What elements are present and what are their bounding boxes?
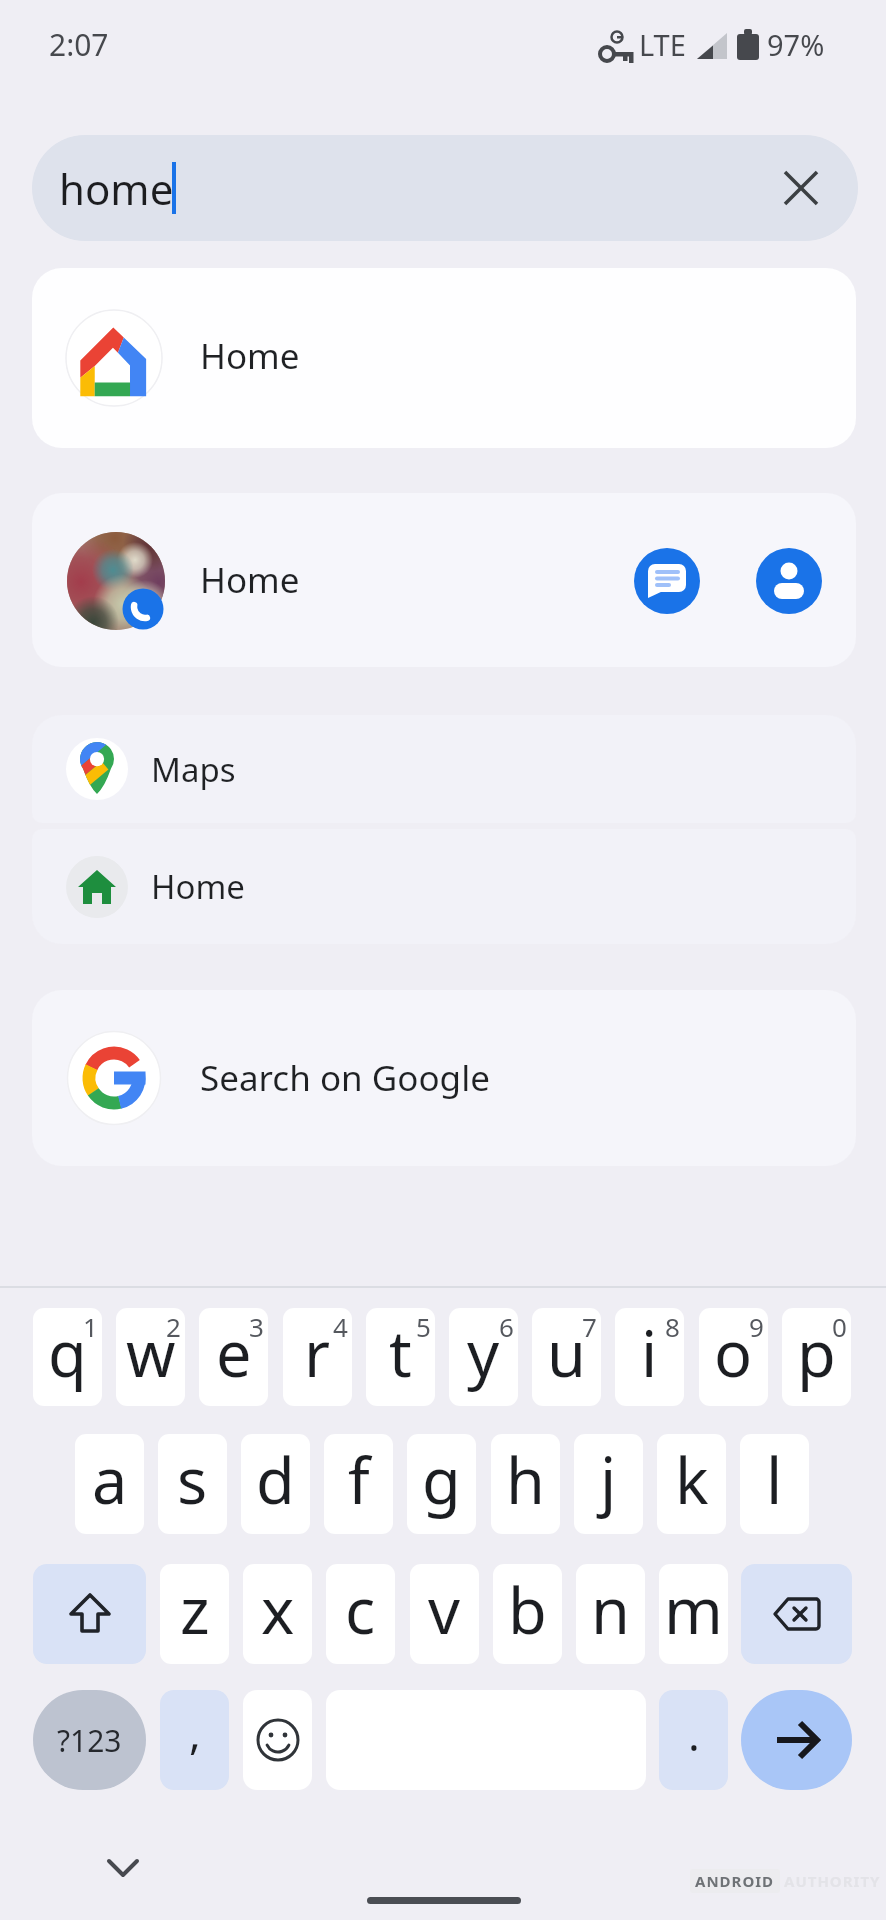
staticText: ,: [189, 1702, 201, 1762]
staticText: z: [180, 1567, 210, 1653]
staticText: j: [600, 1437, 617, 1523]
staticText: a: [92, 1437, 128, 1523]
staticText: Home: [200, 556, 300, 604]
staticText: 97%: [767, 25, 825, 64]
staticText: 7: [582, 1309, 597, 1343]
staticText: w: [126, 1310, 176, 1396]
button[interactable]: g: [407, 1434, 476, 1534]
staticText: f: [348, 1437, 370, 1523]
button[interactable]: d: [241, 1434, 310, 1534]
button[interactable]: Search on Google: [32, 990, 856, 1166]
staticText: 8: [665, 1309, 680, 1343]
staticText: 0: [832, 1309, 847, 1343]
button[interactable]: [741, 1564, 852, 1664]
button[interactable]: r: [283, 1308, 352, 1406]
staticText: 9: [749, 1309, 764, 1343]
button[interactable]: Maps: [32, 715, 856, 823]
staticText: ANDROID: [695, 1871, 775, 1891]
button[interactable]: q: [33, 1308, 102, 1406]
staticText: g: [422, 1437, 461, 1523]
button[interactable]: [756, 548, 822, 614]
staticText: .: [688, 1704, 700, 1764]
button[interactable]: o: [699, 1308, 768, 1406]
button[interactable]: m: [659, 1564, 728, 1664]
button[interactable]: s: [158, 1434, 227, 1534]
button[interactable]: p: [782, 1308, 851, 1406]
button[interactable]: f: [324, 1434, 393, 1534]
button[interactable]: home: [32, 135, 858, 241]
staticText: y: [467, 1310, 500, 1396]
button[interactable]: Home: [32, 829, 856, 944]
staticText: i: [641, 1310, 658, 1396]
button[interactable]: t: [366, 1308, 435, 1406]
button[interactable]: b: [493, 1564, 562, 1664]
button[interactable]: [103, 1852, 143, 1884]
button[interactable]: Home: [32, 268, 856, 448]
staticText: l: [766, 1437, 783, 1523]
staticText: b: [508, 1567, 547, 1653]
staticText: Home: [151, 864, 245, 909]
button[interactable]: y: [449, 1308, 518, 1406]
button[interactable]: ?123: [33, 1690, 146, 1790]
staticText: c: [345, 1567, 376, 1653]
button[interactable]: [33, 1564, 146, 1664]
staticText: u: [547, 1310, 586, 1396]
staticText: 2:07: [49, 24, 109, 65]
staticText: Search on Google: [200, 1054, 490, 1102]
button[interactable]: [243, 1690, 312, 1790]
staticText: Maps: [151, 747, 236, 792]
staticText: n: [591, 1567, 630, 1653]
button[interactable]: w: [116, 1308, 185, 1406]
button[interactable]: e: [199, 1308, 268, 1406]
staticText: x: [261, 1567, 295, 1653]
staticText: p: [797, 1310, 836, 1396]
staticText: AUTHORITY: [784, 1871, 881, 1891]
button[interactable]: u: [532, 1308, 601, 1406]
button[interactable]: k: [657, 1434, 726, 1534]
staticText: v: [428, 1567, 461, 1653]
button[interactable]: v: [410, 1564, 479, 1664]
button[interactable]: l: [740, 1434, 809, 1534]
button[interactable]: n: [576, 1564, 645, 1664]
staticText: 5: [416, 1309, 431, 1343]
staticText: ?123: [57, 1720, 122, 1761]
staticText: home: [59, 160, 174, 217]
staticText: 3: [249, 1309, 264, 1343]
staticText: 6: [499, 1309, 514, 1343]
staticText: Home: [200, 332, 300, 380]
button[interactable]: [769, 156, 833, 220]
staticText: r: [304, 1310, 331, 1396]
staticText: k: [675, 1437, 709, 1523]
button[interactable]: ,: [160, 1690, 229, 1790]
staticText: LTE: [639, 25, 686, 64]
staticText: m: [664, 1567, 723, 1653]
button[interactable]: [634, 548, 700, 614]
staticText: t: [389, 1310, 412, 1396]
button[interactable]: Home: [32, 493, 856, 667]
button[interactable]: a: [75, 1434, 144, 1534]
button[interactable]: .: [659, 1690, 728, 1790]
staticText: s: [177, 1437, 208, 1523]
staticText: e: [216, 1310, 252, 1396]
staticText: 2: [166, 1309, 181, 1343]
staticText: o: [714, 1310, 753, 1396]
button[interactable]: [741, 1690, 852, 1790]
staticText: d: [256, 1437, 295, 1523]
button[interactable]: c: [326, 1564, 395, 1664]
button[interactable]: j: [574, 1434, 643, 1534]
button[interactable]: i: [615, 1308, 684, 1406]
staticText: h: [506, 1437, 545, 1523]
button[interactable]: x: [243, 1564, 312, 1664]
staticText: q: [48, 1310, 87, 1396]
button[interactable]: z: [160, 1564, 229, 1664]
staticText: 1: [83, 1309, 98, 1343]
button[interactable]: h: [491, 1434, 560, 1534]
staticText: 4: [333, 1309, 348, 1343]
